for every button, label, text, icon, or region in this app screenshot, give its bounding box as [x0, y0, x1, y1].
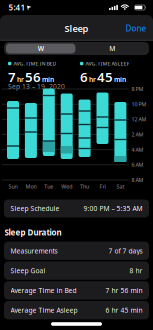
staticText: Sleep Goal [10, 266, 45, 275]
staticText: Thu [80, 183, 89, 190]
staticText: 6 [80, 68, 88, 86]
staticText: Sleep Duration [4, 227, 61, 238]
button[interactable]: M [77, 42, 148, 55]
staticText: Wed [61, 183, 72, 190]
staticText: Tue [44, 183, 53, 190]
staticText: AVG. TIME IN BED [13, 60, 56, 67]
staticText: Sat [116, 183, 124, 190]
staticText: Done [125, 23, 146, 34]
staticText: W [38, 44, 44, 53]
staticText: 4 AM [131, 146, 143, 153]
staticText: Sleep Schedule [10, 204, 59, 213]
staticText: 6 AM [131, 161, 143, 168]
staticText: Fri [99, 183, 105, 190]
staticText: Measurements [10, 246, 57, 255]
staticText: 8 PM [131, 85, 143, 93]
staticText: 7 hr 56 min [105, 286, 142, 295]
button[interactable]: Done [122, 20, 150, 36]
button[interactable]: W [5, 42, 76, 55]
button[interactable]: Sleep Schedule [4, 199, 149, 217]
staticText: 7 of 7 days [108, 246, 142, 255]
staticText: min [114, 75, 126, 84]
staticText: M [109, 44, 115, 53]
staticText: 45 [97, 68, 113, 86]
staticText: 12 AM [131, 116, 146, 123]
staticText: 8 hr [129, 266, 142, 275]
staticText: hr [89, 75, 96, 84]
staticText: Average Time in Bed [10, 286, 76, 295]
staticText: Sun [8, 183, 17, 190]
staticText: hr [17, 75, 24, 84]
staticText: 7 [8, 68, 16, 86]
staticText: 6 hr 45 min [105, 306, 142, 315]
staticText: 56 [25, 68, 41, 86]
staticText: 9:00 PM – 5:35 AM [83, 204, 142, 213]
staticText: Sleep [64, 22, 88, 35]
staticText: 5:41 [8, 2, 25, 13]
staticText: min [42, 75, 54, 84]
staticText: Sep 13 – 19, 2020 [8, 82, 65, 91]
staticText: 2 AM [131, 131, 143, 138]
staticText: Mon [25, 183, 36, 190]
staticText: Average Time Asleep [10, 306, 77, 315]
staticText: 8 AM [131, 176, 143, 184]
staticText: AVG. TIME ASLEEP [85, 60, 129, 67]
staticText: 10 PM [131, 101, 146, 108]
